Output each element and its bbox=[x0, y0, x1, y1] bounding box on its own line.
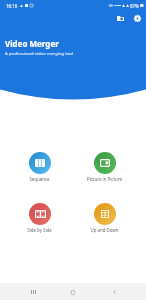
staticText: Video Merger bbox=[5, 38, 59, 49]
staticText: A professional video merging tool bbox=[5, 50, 74, 56]
staticText: Sequence bbox=[29, 176, 50, 182]
staticText: Up and Down bbox=[90, 227, 119, 233]
staticText: 67% bbox=[130, 3, 139, 9]
staticText: Picture in Picture bbox=[87, 176, 122, 182]
button[interactable]: Back bbox=[106, 284, 122, 300]
button[interactable]: Recents bbox=[25, 284, 41, 300]
button[interactable]: My videos bbox=[113, 11, 127, 25]
button[interactable]: Picture in Picture bbox=[72, 152, 137, 182]
staticText: 16:16 bbox=[6, 3, 18, 9]
button[interactable]: Side by Side bbox=[7, 203, 72, 233]
button[interactable]: Up and Down bbox=[72, 203, 137, 233]
button[interactable]: Home bbox=[65, 284, 81, 300]
staticText: Side by Side bbox=[27, 227, 52, 233]
button[interactable]: Sequence bbox=[7, 152, 72, 182]
button[interactable]: Settings bbox=[130, 11, 144, 25]
